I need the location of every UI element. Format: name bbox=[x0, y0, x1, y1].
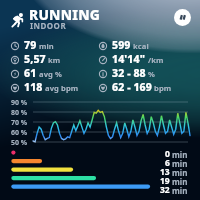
staticText: 62 - 169 bbox=[112, 80, 152, 94]
button[interactable]: 79 bbox=[24, 38, 54, 52]
staticText: 61 bbox=[24, 66, 37, 80]
button[interactable]: Pause bbox=[174, 9, 191, 26]
button[interactable]: 14'14" bbox=[112, 52, 164, 66]
button[interactable]: 61 bbox=[24, 66, 63, 80]
staticText: min bbox=[39, 41, 54, 51]
staticText: 6 bbox=[165, 157, 170, 169]
staticText: 70 % bbox=[11, 118, 28, 128]
staticText: min bbox=[172, 167, 188, 178]
staticText: 90 % bbox=[11, 98, 28, 108]
button[interactable]: 5,57 bbox=[24, 52, 61, 66]
staticText: 32 - 88 bbox=[112, 66, 146, 80]
staticText: % bbox=[148, 69, 155, 79]
staticText: 19 bbox=[160, 175, 170, 187]
staticText: bpm bbox=[154, 83, 172, 93]
staticText: 599 bbox=[112, 38, 131, 52]
staticText: avg % bbox=[39, 69, 63, 79]
staticText: 60 % bbox=[11, 128, 28, 138]
staticText: min bbox=[172, 149, 188, 160]
staticText: kcal bbox=[133, 41, 149, 51]
staticText: min bbox=[172, 176, 188, 187]
staticText: /km bbox=[148, 55, 164, 65]
button[interactable]: 118 bbox=[24, 80, 79, 94]
staticText: 13 bbox=[160, 166, 170, 178]
staticText: 118 bbox=[24, 80, 43, 94]
staticText: RUNNING bbox=[29, 5, 101, 24]
staticText: 0 bbox=[165, 148, 170, 160]
staticText: 50 % bbox=[11, 138, 28, 148]
staticText: min bbox=[172, 158, 188, 169]
staticText: 5,57 bbox=[24, 52, 46, 66]
staticText: INDOOR bbox=[30, 20, 67, 31]
staticText: avg bpm bbox=[45, 83, 79, 93]
staticText: 79 bbox=[24, 38, 37, 52]
staticText: 32 bbox=[160, 184, 170, 196]
staticText: 80 % bbox=[11, 108, 28, 118]
staticText: km bbox=[48, 55, 61, 65]
button[interactable]: 599 bbox=[112, 38, 149, 52]
button[interactable]: 32 - 88 bbox=[112, 66, 155, 80]
staticText: 14'14" bbox=[112, 52, 146, 66]
button[interactable]: 62 - 169 bbox=[112, 80, 172, 94]
staticText: min bbox=[172, 185, 188, 196]
